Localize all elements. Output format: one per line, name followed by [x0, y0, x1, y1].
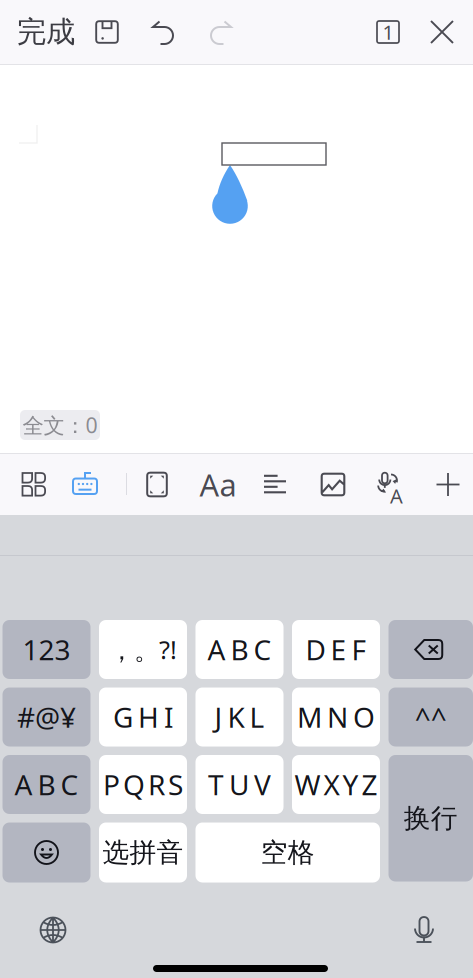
staticText: 123 [22, 631, 70, 668]
button[interactable]: 换行 [388, 755, 473, 881]
button[interactable]: Switch keyboard [31, 908, 75, 952]
button[interactable]: G H I [99, 687, 187, 746]
button[interactable]: P Q R S [99, 755, 187, 814]
staticText: 空格 [261, 836, 315, 869]
staticText: ^^ [415, 698, 447, 736]
staticText: 完成 [17, 14, 75, 50]
staticText: 全文：0 [22, 411, 97, 439]
staticText: A B C [14, 766, 78, 803]
button[interactable]: A B C [195, 620, 283, 679]
button[interactable]: Dictation [402, 908, 446, 952]
button[interactable]: M N O [292, 687, 380, 746]
button[interactable]: 选拼音 [99, 822, 187, 882]
button[interactable]: Page setup [131, 454, 183, 515]
staticText: P Q R S [103, 766, 183, 803]
button[interactable]: ^^ [388, 687, 473, 746]
button[interactable]: #@¥ [2, 687, 90, 746]
button[interactable] [2, 822, 90, 882]
staticText: ，。?! [109, 633, 177, 666]
staticText: G H I [113, 698, 173, 736]
staticText: A [390, 482, 403, 509]
staticText: T U V [208, 766, 271, 803]
staticText: 换行 [404, 802, 458, 835]
button[interactable]: D E F [292, 620, 380, 679]
button[interactable] [388, 620, 473, 679]
staticText: 选拼音 [102, 836, 183, 869]
staticText: #@¥ [17, 698, 76, 736]
staticText: M N O [297, 698, 375, 736]
button[interactable]: Undo [140, 0, 188, 64]
button[interactable]: ，。?! [99, 620, 187, 679]
button[interactable]: Keyboard [60, 454, 112, 515]
button[interactable]: Paragraph [249, 454, 301, 515]
button[interactable]: Tools [8, 454, 60, 515]
staticText: W X Y Z [294, 766, 377, 803]
button[interactable]: Insert picture [307, 454, 359, 515]
button[interactable]: More [422, 454, 473, 515]
button[interactable]: W X Y Z [292, 755, 380, 814]
button[interactable]: Aa [192, 454, 244, 515]
button[interactable]: Close [418, 0, 466, 64]
button[interactable]: Redo [196, 0, 244, 64]
button[interactable]: J K L [195, 687, 283, 746]
button[interactable]: 123 [2, 620, 90, 679]
button[interactable]: Translate [363, 454, 415, 515]
button[interactable]: 完成 [4, 0, 88, 64]
staticText: J K L [214, 698, 264, 736]
button[interactable]: Page count [364, 0, 412, 64]
staticText: 1 [382, 19, 393, 45]
button[interactable]: 空格 [195, 822, 380, 882]
staticText: A B C [207, 631, 271, 668]
staticText: D E F [305, 631, 366, 668]
button[interactable]: Save [85, 0, 129, 64]
staticText: Aa [199, 464, 236, 505]
button[interactable]: A B C [2, 755, 90, 814]
button[interactable]: T U V [195, 755, 283, 814]
